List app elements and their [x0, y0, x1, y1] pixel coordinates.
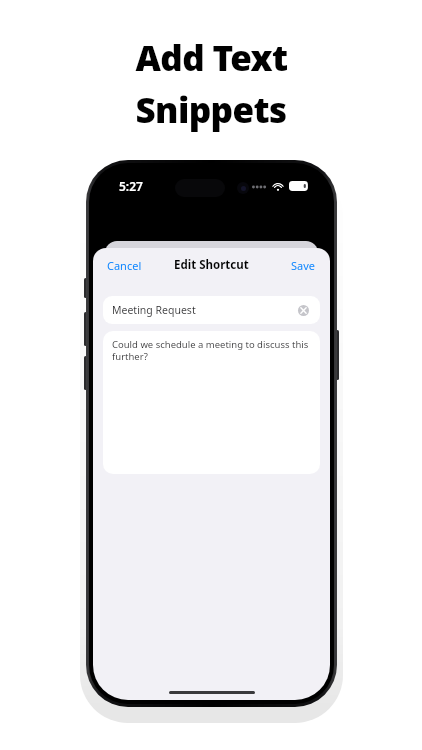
staticText: Meeting Request — [112, 303, 295, 317]
staticText: Edit Shortcut — [174, 257, 249, 273]
staticText: Cancel — [107, 258, 142, 273]
staticText: Snippets — [135, 86, 287, 134]
button[interactable]: Meeting Request — [103, 296, 320, 324]
staticText: 5:27 — [119, 178, 143, 194]
button[interactable]: Could we schedule a meeting to discuss t… — [103, 331, 320, 474]
button[interactable]: Save — [283, 253, 324, 278]
button[interactable]: Clear text — [295, 302, 311, 318]
staticText: Add Text — [135, 34, 288, 82]
staticText: Save — [291, 258, 316, 273]
staticText: Could we schedule a meeting to discuss t… — [112, 338, 309, 363]
button[interactable]: Cancel — [99, 253, 150, 278]
